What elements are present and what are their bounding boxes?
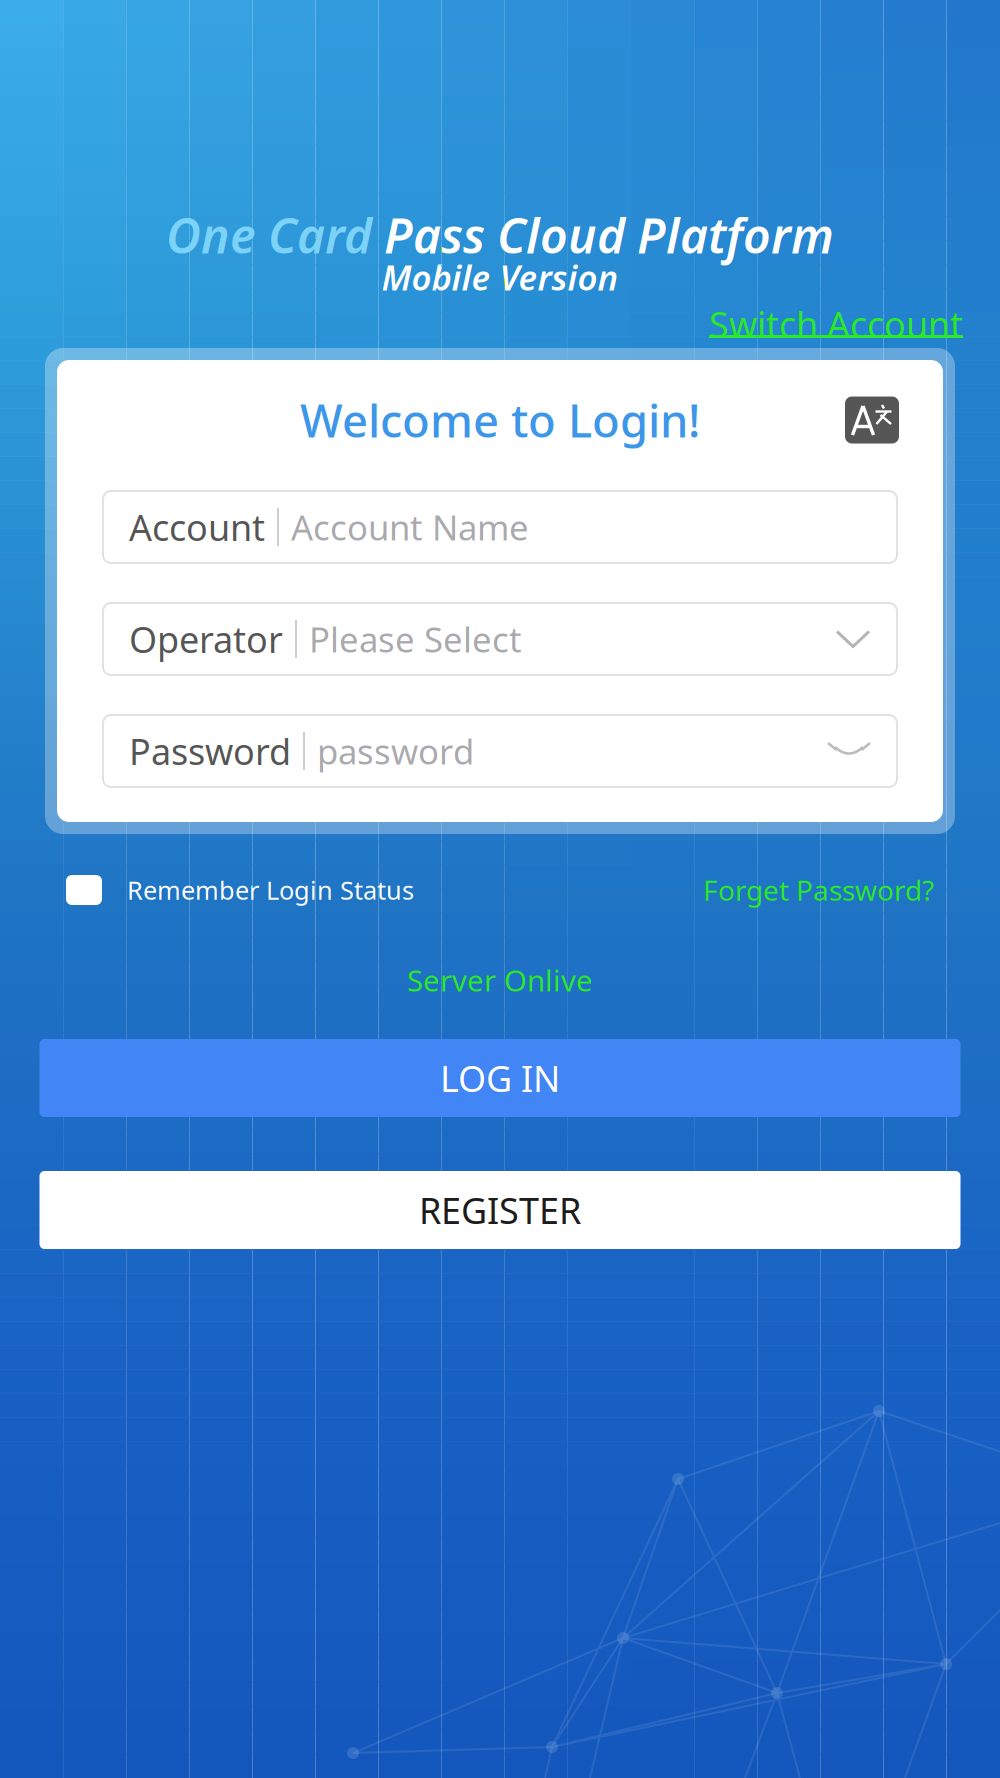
staticText: Forget Password? [703,871,934,909]
staticText: password [317,728,474,774]
button[interactable]: LOG IN [39,1039,960,1117]
staticText: Mobile Version [381,254,618,300]
staticText: One Card [166,203,384,267]
staticText: Operator [129,615,283,663]
staticText: Pass Cloud Platform [384,203,834,267]
button[interactable]: Switch language [845,396,899,443]
staticText: Password [129,727,291,775]
button[interactable]: Password [103,715,897,787]
button[interactable]: Operator [103,603,897,675]
staticText: Welcome to Login! [300,390,700,450]
staticText: REGISTER [419,1186,581,1234]
staticText: Server Onlive [407,960,593,999]
button[interactable]: Switch Account [709,310,963,338]
staticText: Account Name [291,504,529,550]
staticText: LOG IN [440,1054,560,1102]
button[interactable]: REGISTER [39,1171,960,1249]
staticText: Switch Account [709,300,963,348]
button[interactable]: Forget Password? [703,871,934,909]
staticText: Account [129,503,265,551]
button[interactable]: Account [103,491,897,563]
staticText: Remember Login Status [127,873,414,907]
staticText: Please Select [309,616,522,662]
button[interactable]: Remember Login Status [66,873,414,907]
